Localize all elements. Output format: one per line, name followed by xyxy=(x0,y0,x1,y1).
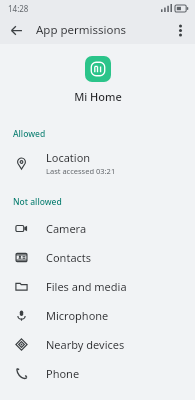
button[interactable]: Nearby devices xyxy=(0,330,195,359)
button[interactable]: Camera xyxy=(0,214,195,243)
staticText: Microphone xyxy=(46,308,109,323)
staticText: Last accessed 03:21 xyxy=(46,166,116,176)
staticText: Allowed xyxy=(13,128,46,140)
staticText: Contacts xyxy=(46,250,92,265)
button[interactable]: Files and media xyxy=(0,272,195,301)
staticText: 14:28 xyxy=(8,3,29,14)
staticText: Camera xyxy=(46,221,87,236)
staticText: Mi Home xyxy=(74,89,122,104)
button[interactable]: Microphone xyxy=(0,301,195,330)
button[interactable]: Location xyxy=(0,146,195,180)
button[interactable]: Back xyxy=(4,18,28,42)
staticText: App permissions xyxy=(36,22,127,38)
staticText: Location xyxy=(46,150,91,165)
staticText: Files and media xyxy=(46,279,127,294)
button[interactable]: More options xyxy=(168,18,192,42)
staticText: Phone xyxy=(46,366,80,381)
button[interactable]: Contacts xyxy=(0,243,195,272)
button[interactable]: Phone xyxy=(0,359,195,388)
staticText: Nearby devices xyxy=(46,337,125,352)
staticText: Not allowed xyxy=(13,196,62,208)
